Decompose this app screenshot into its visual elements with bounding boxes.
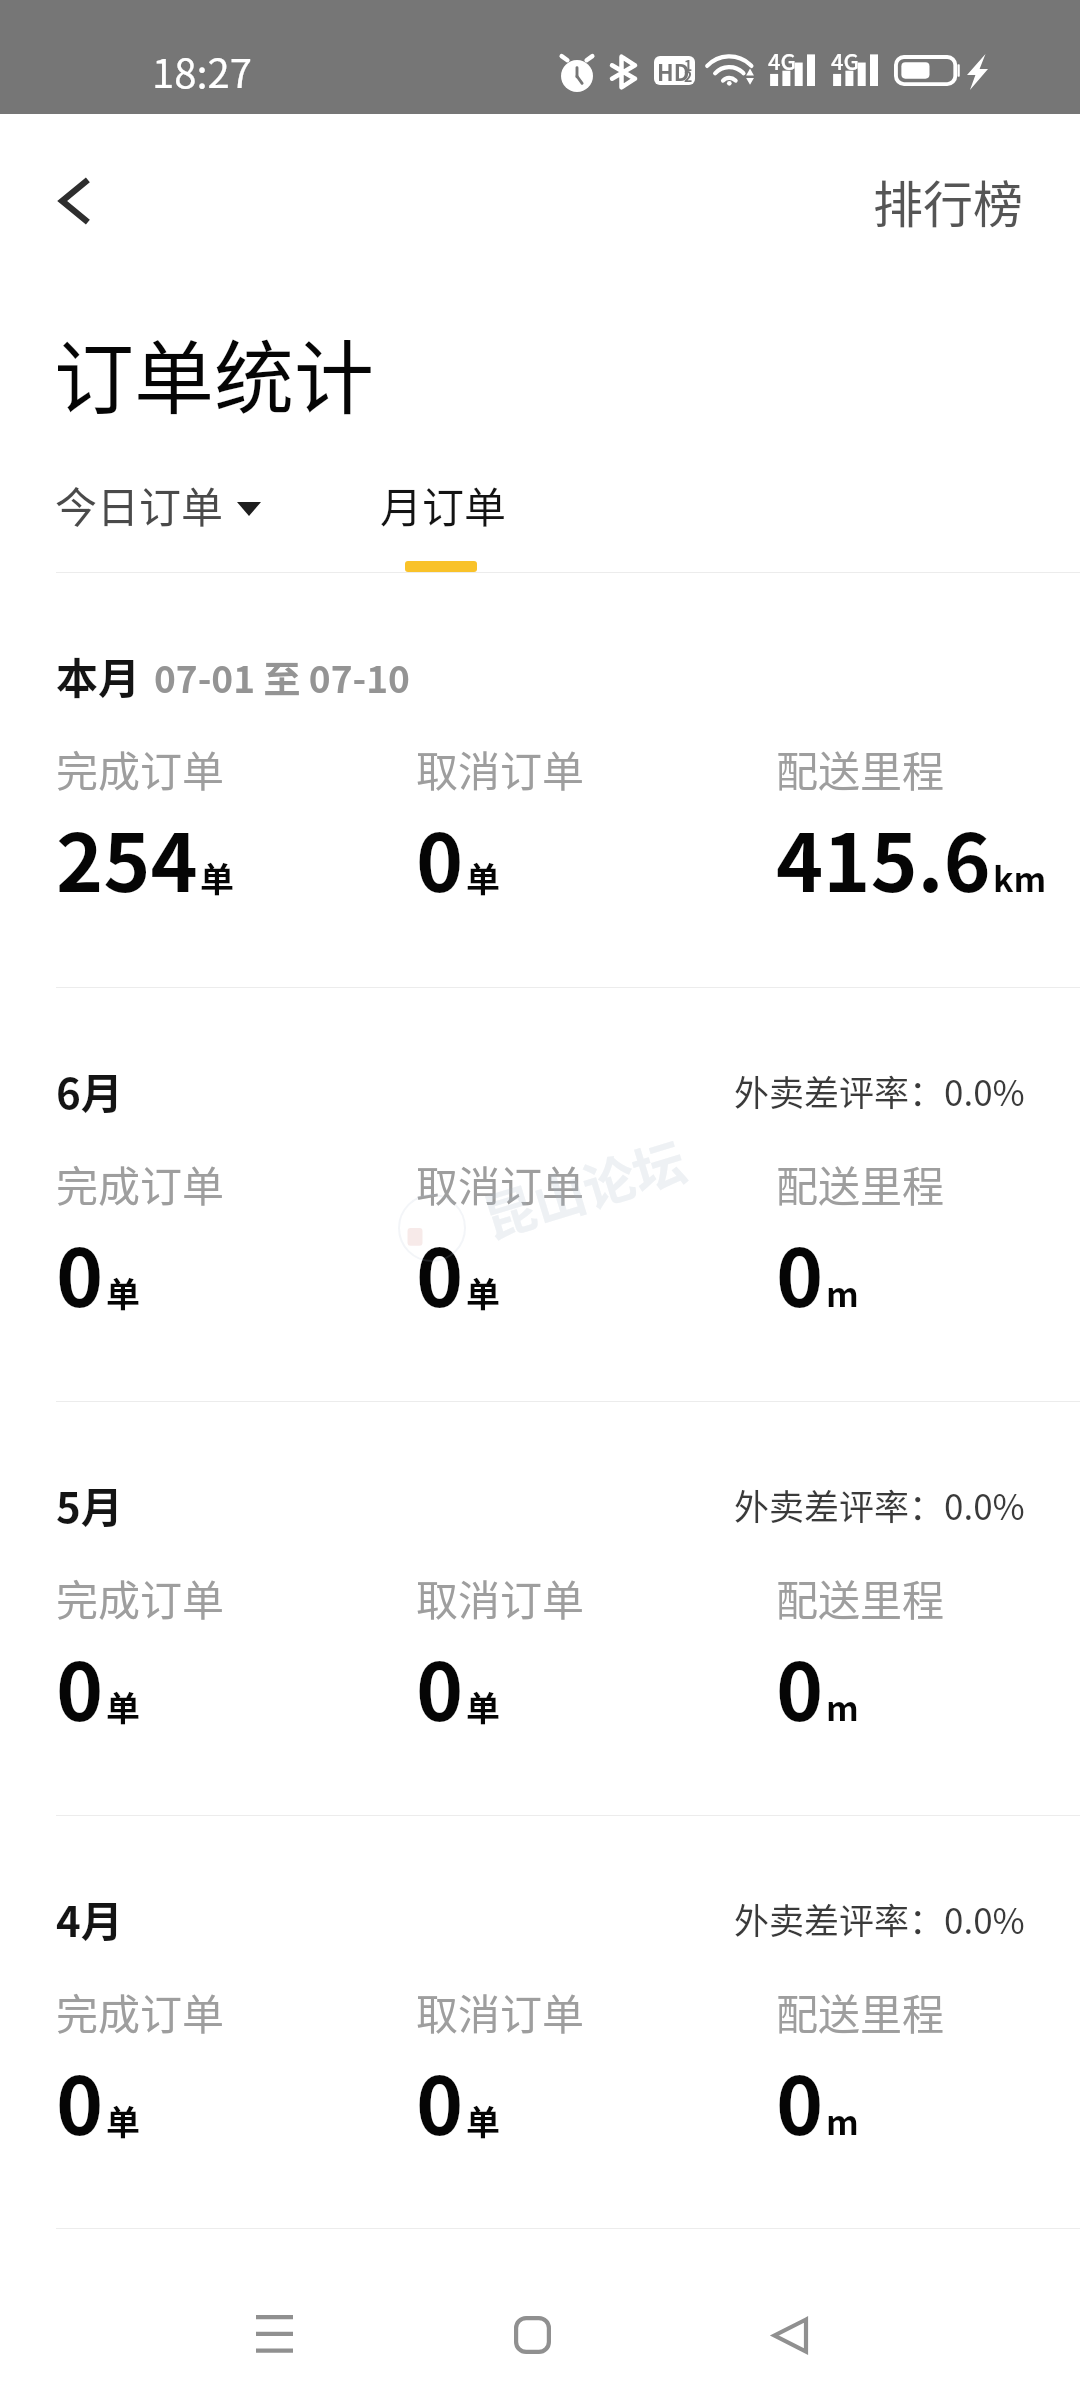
staticText: 完成订单: [56, 1981, 225, 2042]
staticText: 外卖差评率：0.0%: [734, 1893, 1025, 1944]
staticText: 本月: [56, 645, 141, 706]
button[interactable]: Back: [28, 154, 122, 248]
staticText: 4月: [56, 1888, 123, 1949]
staticText: 单: [200, 853, 234, 902]
staticText: 5月: [56, 1474, 123, 1535]
staticText: HD: [657, 56, 690, 84]
staticText: 取消订单: [416, 738, 585, 799]
staticText: 07-01 至 07-10: [154, 650, 410, 704]
button[interactable]: 今日订单: [42, 460, 274, 549]
button[interactable]: Back: [730, 2275, 850, 2395]
staticText: 单: [106, 1268, 140, 1317]
staticText: 排行榜: [873, 165, 1023, 237]
staticText: 单: [466, 1268, 500, 1317]
staticText: 415.6: [776, 799, 991, 915]
staticText: 单: [466, 2096, 500, 2145]
staticText: km: [993, 853, 1047, 902]
staticText: 外卖差评率：0.0%: [734, 1065, 1025, 1116]
staticText: 配送里程: [776, 738, 945, 799]
staticText: 完成订单: [56, 1153, 225, 1214]
staticText: 0: [776, 1628, 824, 1744]
staticText: 单: [106, 2096, 140, 2145]
staticText: 月订单: [380, 474, 507, 535]
staticText: 订单统计: [54, 314, 374, 430]
button[interactable]: 月订单: [367, 460, 520, 549]
staticText: 完成订单: [56, 738, 225, 799]
staticText: 0: [416, 1628, 464, 1744]
staticText: 4G: [831, 44, 859, 76]
button[interactable]: 排行榜: [843, 149, 1080, 253]
staticText: 0: [56, 1214, 104, 1330]
staticText: 配送里程: [776, 1981, 945, 2042]
staticText: 6月: [56, 1060, 123, 1121]
staticText: 0: [776, 1214, 824, 1330]
staticText: 单: [466, 1682, 500, 1731]
button[interactable]: Home: [472, 2275, 592, 2395]
staticText: 0: [416, 799, 464, 915]
staticText: 1: [684, 56, 693, 75]
staticText: 0: [56, 1628, 104, 1744]
staticText: m: [826, 1268, 859, 1317]
staticText: 配送里程: [776, 1567, 945, 1628]
staticText: 0: [776, 2042, 824, 2158]
staticText: 取消订单: [416, 1981, 585, 2042]
staticText: 取消订单: [416, 1153, 585, 1214]
staticText: 今日订单: [55, 474, 224, 535]
staticText: 4G: [768, 44, 796, 76]
staticText: m: [826, 2096, 859, 2145]
button[interactable]: Recent apps: [214, 2275, 334, 2395]
staticText: 0: [56, 2042, 104, 2158]
staticText: 0: [416, 2042, 464, 2158]
staticText: 取消订单: [416, 1567, 585, 1628]
staticText: 2: [684, 66, 693, 85]
staticText: 0: [416, 1214, 464, 1330]
staticText: 254: [56, 799, 198, 915]
staticText: 单: [106, 1682, 140, 1731]
staticText: 配送里程: [776, 1153, 945, 1214]
staticText: 完成订单: [56, 1567, 225, 1628]
staticText: 昆山论坛: [473, 1120, 695, 1253]
staticText: 外卖差评率：0.0%: [734, 1479, 1025, 1530]
staticText: 单: [466, 853, 500, 902]
staticText: 18:27: [152, 42, 252, 100]
staticText: m: [826, 1682, 859, 1731]
